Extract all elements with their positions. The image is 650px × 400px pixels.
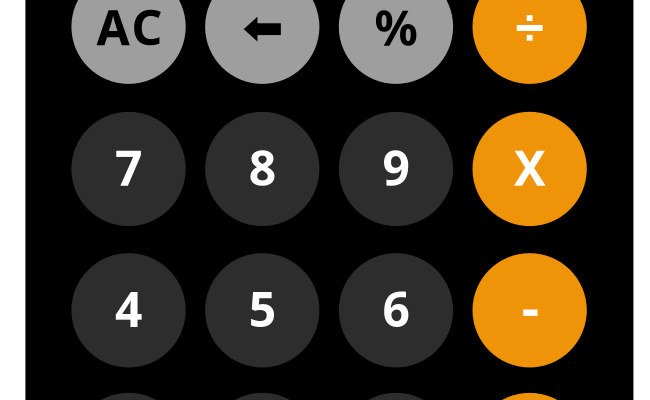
button[interactable]: Multiply <box>472 112 587 226</box>
button[interactable]: 1 <box>71 393 186 400</box>
staticText: X <box>514 135 546 199</box>
staticText: 8 <box>249 135 276 199</box>
staticText: 6 <box>382 276 409 340</box>
button[interactable]: 4 <box>71 253 186 367</box>
button[interactable]: 3 <box>339 393 453 400</box>
button[interactable]: 2 <box>205 393 319 400</box>
button[interactable]: Minus <box>472 253 587 367</box>
staticText: 5 <box>249 276 276 340</box>
staticText: % <box>374 0 417 59</box>
button[interactable]: Divide <box>472 0 587 84</box>
button[interactable]: Plus <box>472 393 587 400</box>
button[interactable]: Delete <box>205 0 319 84</box>
button[interactable]: 5 <box>205 253 319 367</box>
staticText: 9 <box>382 135 409 199</box>
button[interactable]: 7 <box>71 112 186 226</box>
button[interactable]: 8 <box>205 112 319 226</box>
button[interactable]: Percent <box>339 0 453 84</box>
staticText: 4 <box>115 276 142 340</box>
staticText: AC <box>97 0 163 59</box>
staticText: 7 <box>115 135 142 199</box>
button[interactable]: 6 <box>339 253 453 367</box>
button[interactable]: All clear <box>71 0 186 84</box>
button[interactable]: 9 <box>339 112 453 226</box>
